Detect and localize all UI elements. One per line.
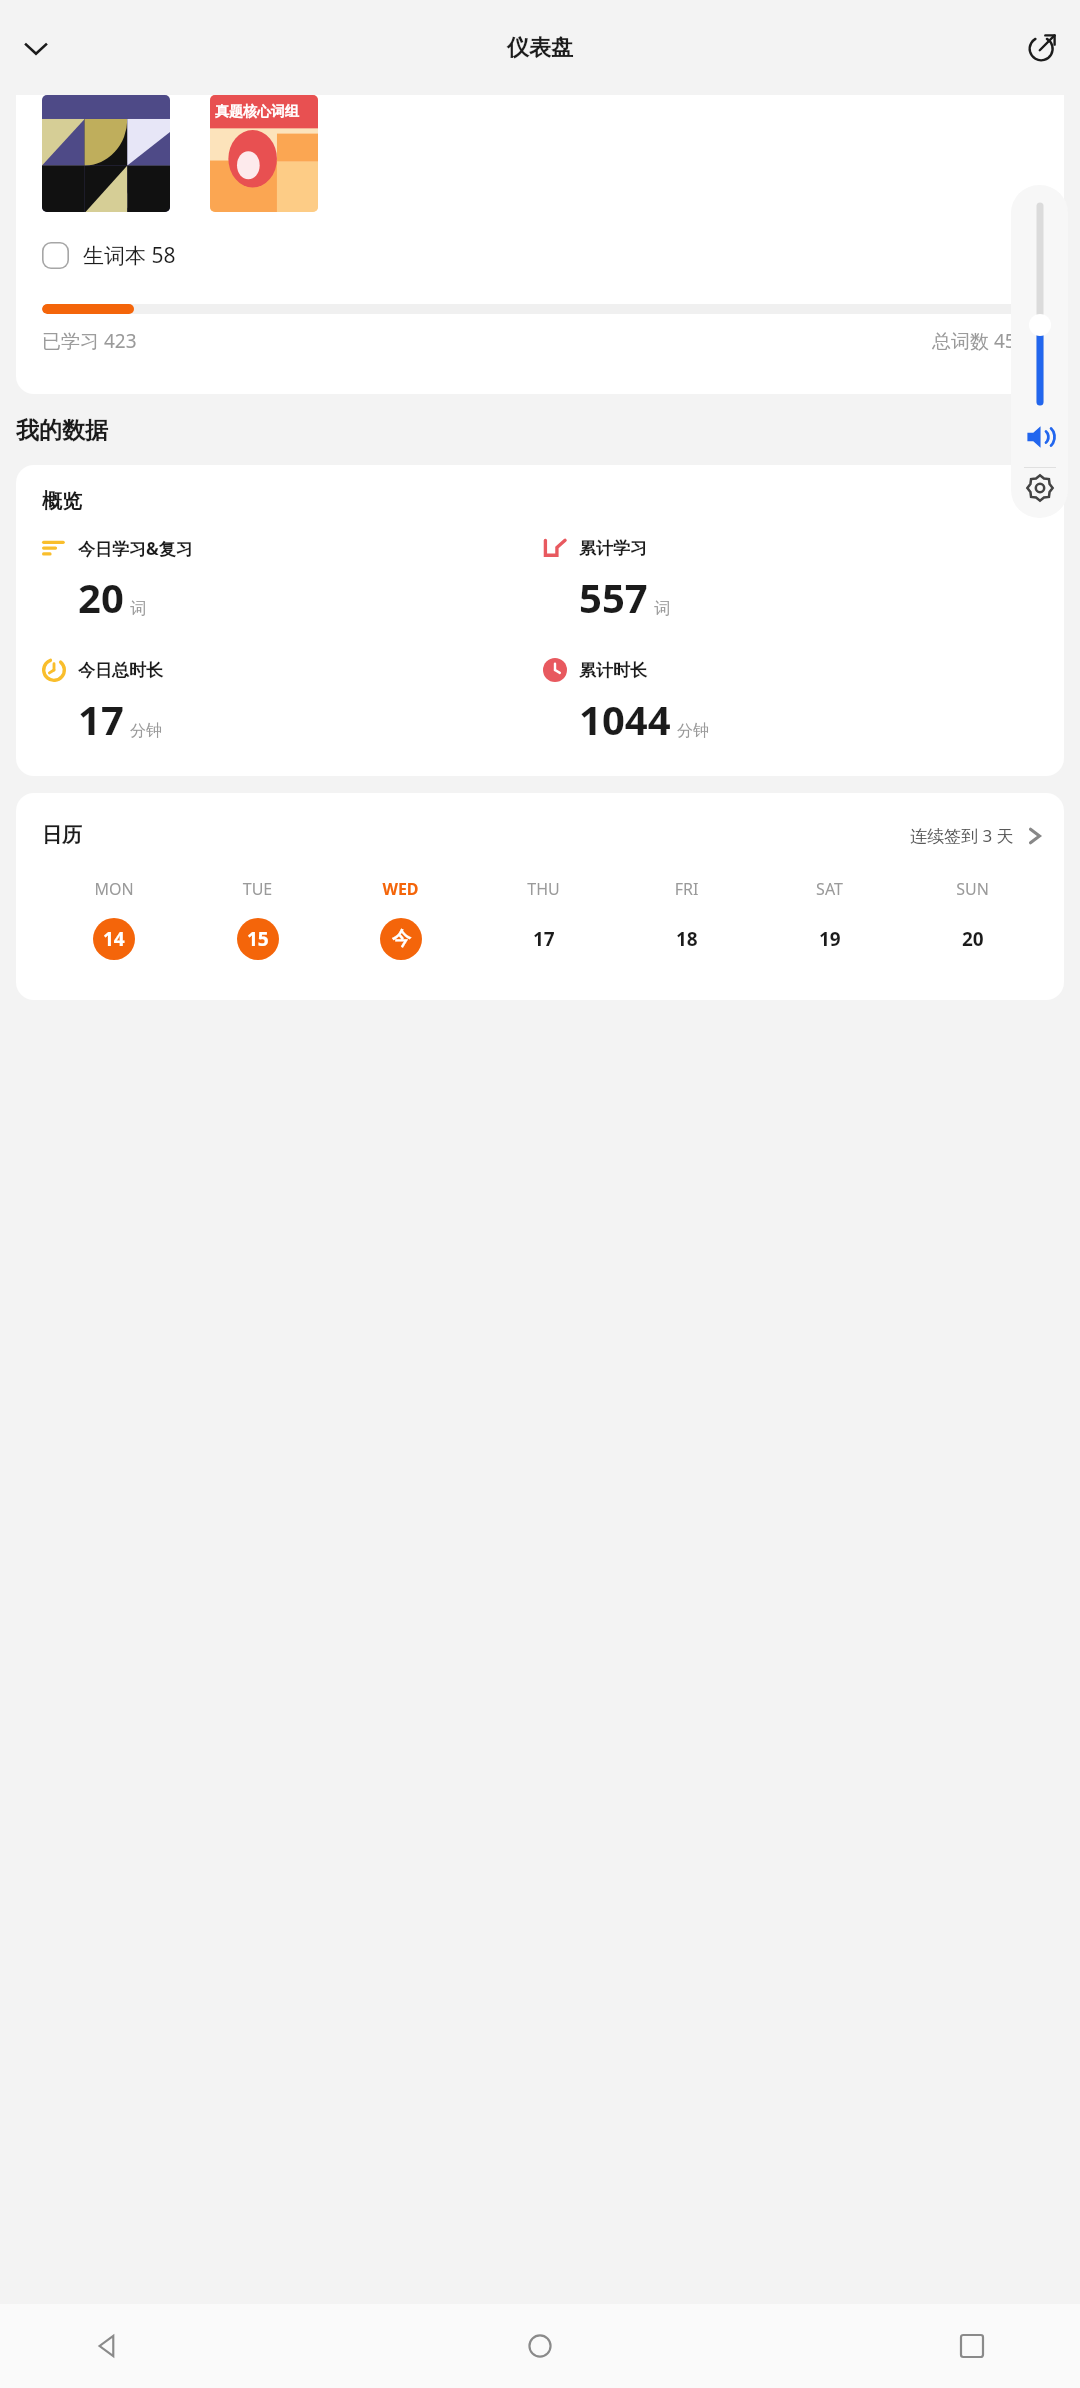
button[interactable]: Collapse <box>8 20 64 76</box>
staticText: 已学习 423 <box>42 328 137 354</box>
staticText: 今日学习&复习 <box>78 537 193 560</box>
staticText: WED <box>329 878 472 900</box>
button[interactable]: 概览 <box>16 465 1064 776</box>
staticText: 累计学习 <box>579 538 647 559</box>
staticText: 连续签到 3 天 <box>910 824 1014 847</box>
staticText: 20 <box>962 926 984 952</box>
button[interactable]: 真题核心词组 <box>210 95 318 212</box>
staticText: 生词本 58 <box>83 241 176 270</box>
staticText: 概览 <box>42 489 82 514</box>
staticText: THU <box>472 878 615 900</box>
button[interactable]: Share <box>1014 20 1070 76</box>
staticText: 日历 <box>42 823 82 848</box>
button[interactable]: 真题核心词组 <box>16 95 1064 394</box>
staticText: TUE <box>186 878 329 900</box>
staticText: FRI <box>615 878 758 900</box>
button[interactable]: 生词本 58 <box>42 230 176 280</box>
button[interactable]: 日历 <box>16 793 1064 1000</box>
button[interactable]: 18 <box>666 918 708 960</box>
button[interactable]: 14 <box>93 918 135 960</box>
staticText: 17 <box>78 692 124 746</box>
button[interactable]: 连续签到 3 天 <box>910 824 1044 847</box>
button[interactable]: 19 <box>809 918 851 960</box>
button[interactable]: 20 <box>952 918 994 960</box>
staticText: 今日总时长 <box>78 660 163 681</box>
staticText: 今 <box>392 927 411 951</box>
staticText: 词 <box>654 599 670 619</box>
button[interactable]: 今 <box>380 918 422 960</box>
button[interactable]: 17 <box>523 918 565 960</box>
button[interactable]: 15 <box>237 918 279 960</box>
staticText: 557 <box>579 570 648 624</box>
button[interactable]: Recents <box>944 2318 1000 2374</box>
staticText: 累计时长 <box>579 660 647 681</box>
staticText: 18 <box>676 926 698 952</box>
button[interactable]: Volume slider <box>1020 199 1060 409</box>
staticText: 分钟 <box>677 721 709 741</box>
button[interactable]: Back <box>80 2318 136 2374</box>
staticText: SAT <box>758 878 901 900</box>
staticText: 14 <box>103 926 125 952</box>
staticText: SUN <box>901 878 1044 900</box>
staticText: 分钟 <box>130 721 162 741</box>
staticText: 词 <box>130 599 146 619</box>
staticText: 19 <box>819 926 841 952</box>
staticText: 17 <box>533 926 555 952</box>
staticText: 仪表盘 <box>507 34 573 62</box>
staticText: 1044 <box>579 692 671 746</box>
staticText: 15 <box>247 926 269 952</box>
staticText: 真题核心词组 <box>215 103 299 121</box>
button[interactable]: Home <box>512 2318 568 2374</box>
staticText: 20 <box>78 570 124 624</box>
button[interactable]: Volume <box>1016 413 1064 461</box>
staticText: MON <box>42 878 186 900</box>
staticText: 总词数 4578 <box>932 328 1038 354</box>
button[interactable]: Sound settings <box>1016 464 1064 512</box>
staticText: 我的数据 <box>16 416 108 445</box>
button[interactable] <box>42 95 170 212</box>
